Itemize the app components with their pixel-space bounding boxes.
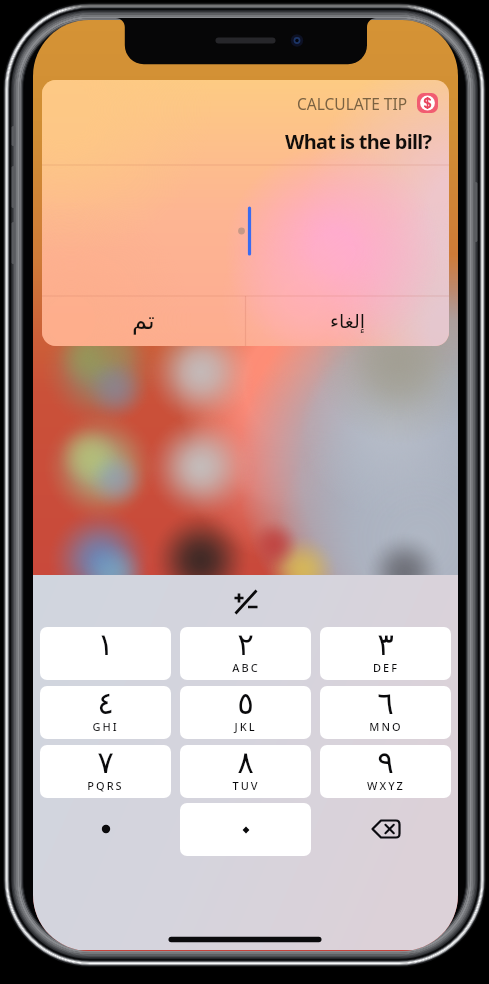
- staticText: TUV: [232, 778, 260, 793]
- button[interactable]: ٤: [40, 686, 171, 739]
- button[interactable]: Backspace: [320, 803, 451, 855]
- staticText: ٣: [377, 627, 394, 662]
- staticText: ٢: [237, 627, 254, 662]
- button[interactable]: ٧: [40, 745, 171, 798]
- button[interactable]: ٦: [320, 686, 451, 739]
- staticText: WXYZ: [367, 778, 405, 793]
- button[interactable]: ٢: [180, 627, 311, 680]
- staticText: ٩: [377, 745, 394, 780]
- staticText: ABC: [232, 660, 260, 675]
- staticText: PQRS: [87, 778, 124, 793]
- staticText: ١: [97, 627, 114, 662]
- staticText: ٧: [97, 745, 114, 780]
- button[interactable]: ٣: [320, 627, 451, 680]
- staticText: JKL: [234, 719, 257, 734]
- staticText: MNO: [369, 719, 403, 734]
- staticText: إلغاء: [330, 310, 365, 332]
- staticText: ٨: [237, 745, 254, 780]
- button[interactable]: CALCULATE TIP: [297, 93, 438, 113]
- staticText: ٤: [97, 686, 114, 721]
- staticText: CALCULATE TIP: [297, 93, 408, 113]
- button[interactable]: Zero: [180, 803, 311, 856]
- staticText: DEF: [373, 660, 399, 675]
- button[interactable]: ٩: [320, 745, 451, 798]
- staticText: تم: [132, 307, 155, 335]
- staticText: GHI: [92, 719, 119, 734]
- staticText: ٥: [237, 686, 254, 721]
- staticText: What is the bill?: [285, 128, 432, 150]
- button[interactable]: ٥: [180, 686, 311, 739]
- button[interactable]: ٨: [180, 745, 311, 798]
- button[interactable]: إلغاء: [245, 296, 449, 346]
- staticText: ٦: [377, 686, 394, 721]
- button[interactable]: تم: [42, 296, 245, 346]
- button[interactable]: Plus minus: [33, 575, 458, 628]
- button[interactable]: ١: [40, 627, 171, 680]
- button[interactable]: Decimal point: [40, 803, 171, 855]
